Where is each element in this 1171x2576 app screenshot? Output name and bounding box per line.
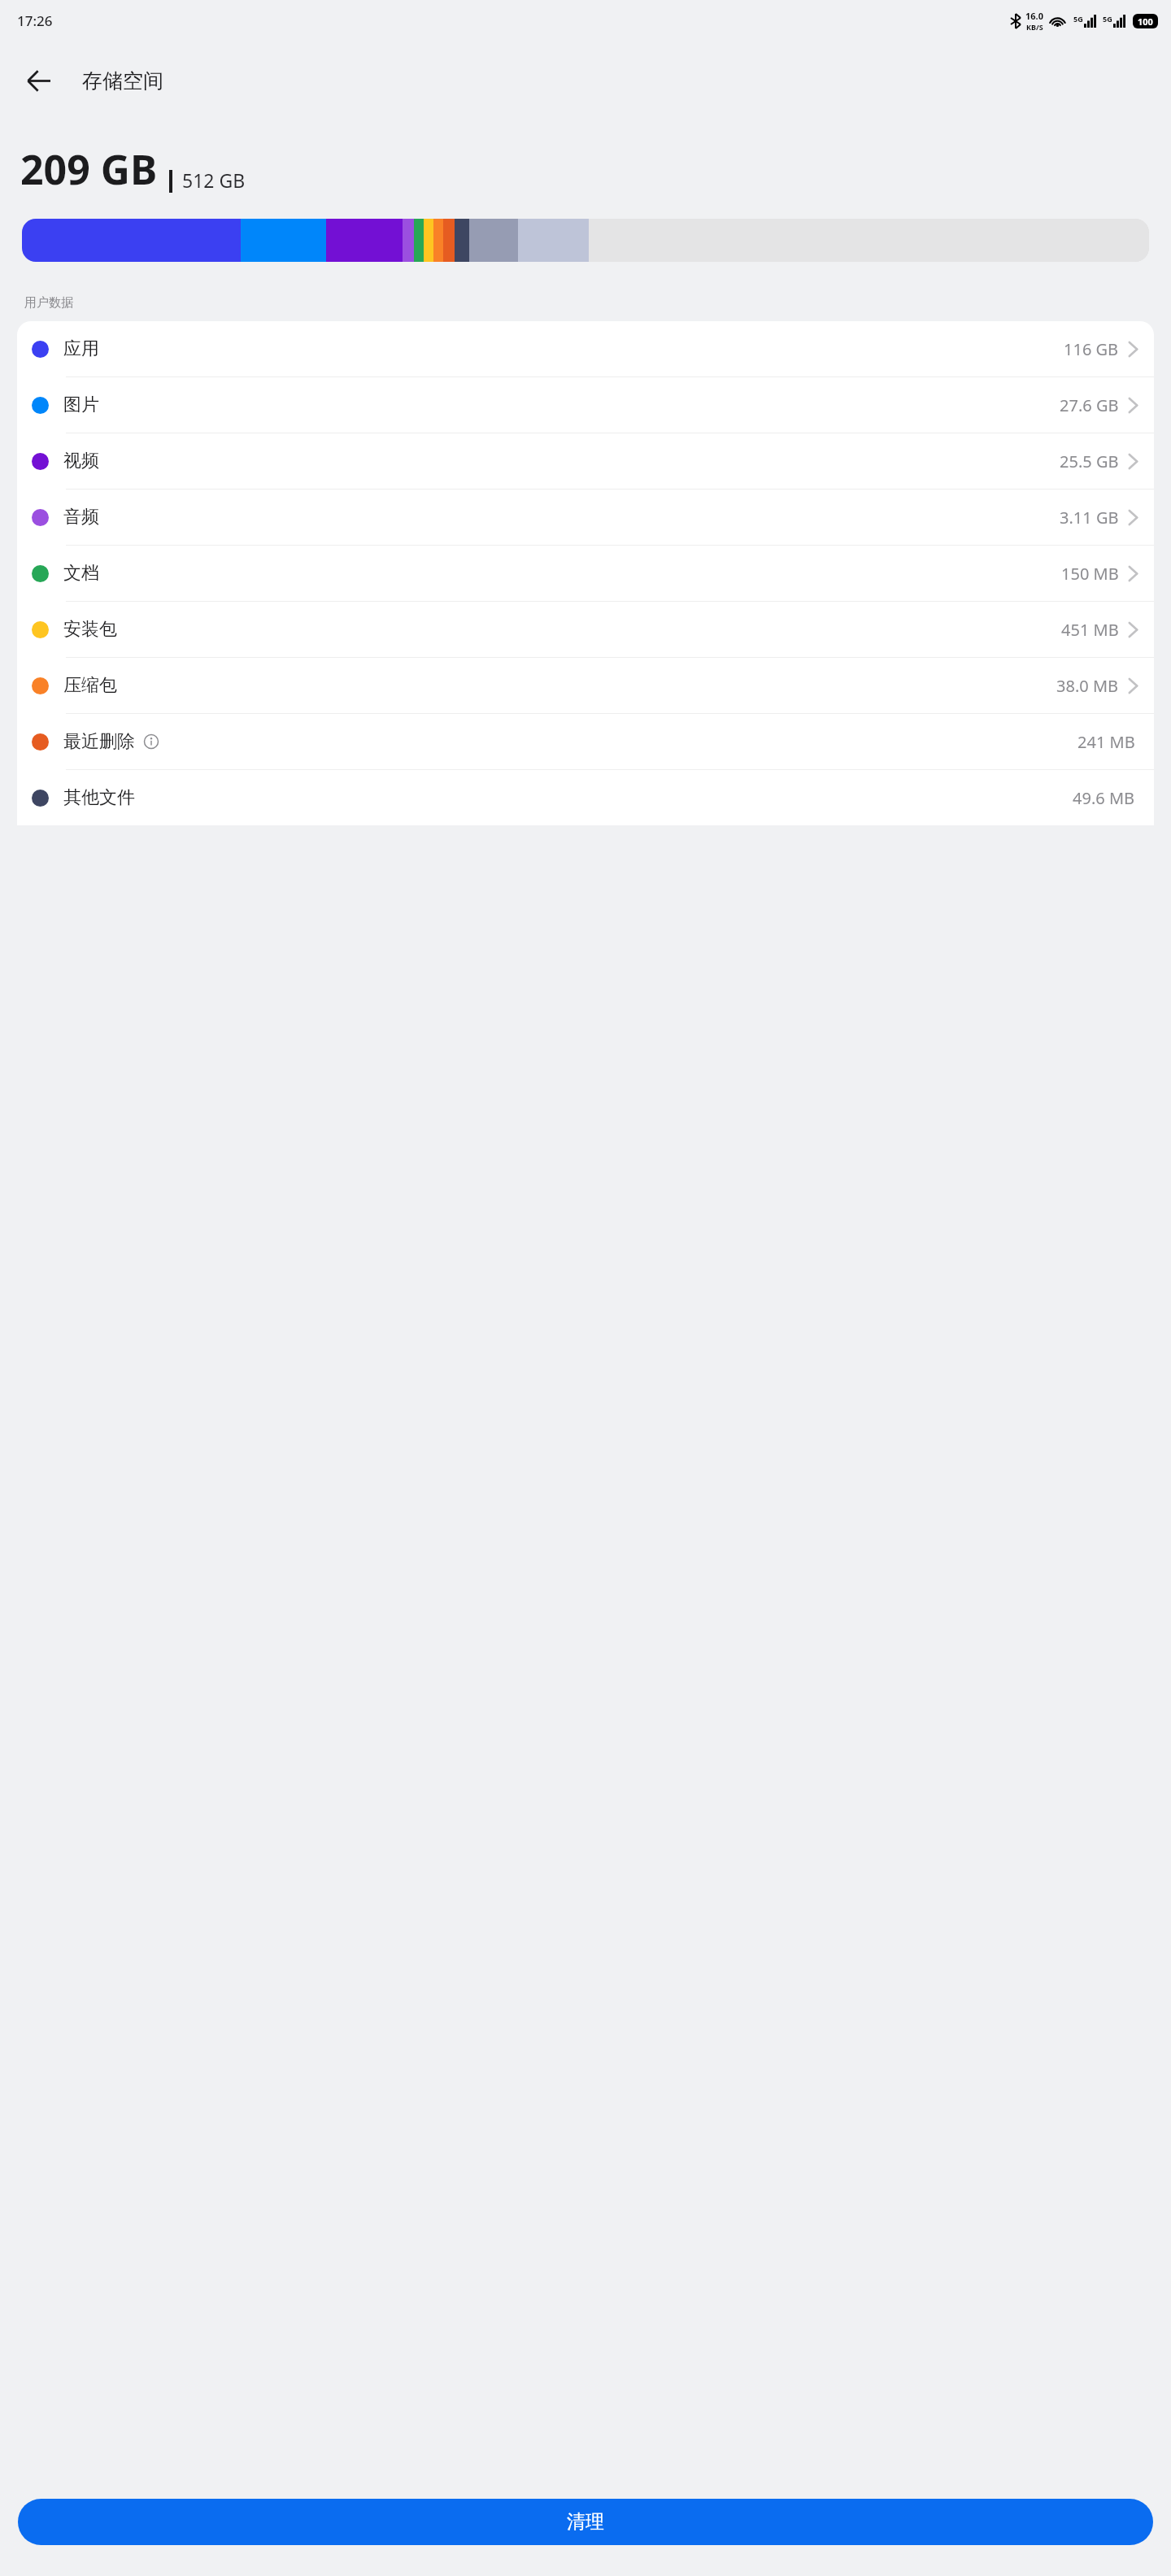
staticText: 150 MB — [1061, 563, 1119, 585]
button[interactable]: 清理 — [18, 2499, 1153, 2545]
staticText: 清理 — [567, 2510, 604, 2534]
staticText: 安装包 — [63, 618, 117, 641]
staticText: 25.5 GB — [1060, 450, 1119, 472]
staticText: 49.6 MB — [1073, 787, 1135, 809]
button[interactable]: Back — [0, 42, 76, 119]
button[interactable]: 最近删除 — [17, 714, 1154, 769]
staticText: 17:26 — [17, 11, 53, 30]
staticText: 38.0 MB — [1056, 675, 1119, 697]
staticText: 用户数据 — [24, 295, 73, 311]
staticText: 存储空间 — [82, 68, 163, 94]
staticText: KB/S — [1026, 22, 1043, 32]
button[interactable]: 视频 — [17, 433, 1154, 489]
staticText: 图片 — [63, 394, 99, 416]
staticText: 27.6 GB — [1060, 394, 1119, 416]
staticText: 5G — [1073, 14, 1083, 24]
staticText: 451 MB — [1061, 619, 1119, 641]
button[interactable]: 应用 — [17, 321, 1154, 376]
staticText: 116 GB — [1064, 338, 1119, 360]
button[interactable]: 图片 — [17, 377, 1154, 433]
staticText: 压缩包 — [63, 674, 117, 697]
staticText: 100 — [1138, 15, 1153, 28]
button[interactable]: 安装包 — [17, 602, 1154, 657]
button[interactable]: 音频 — [17, 490, 1154, 545]
staticText: 最近删除 — [63, 730, 135, 753]
staticText: 文档 — [63, 562, 99, 585]
staticText: 其他文件 — [63, 786, 135, 809]
staticText: 209 GB — [20, 141, 158, 197]
staticText: 241 MB — [1077, 731, 1135, 753]
staticText: 16.0 — [1025, 10, 1043, 22]
staticText: 5G — [1103, 14, 1112, 24]
button[interactable]: 其他文件 — [17, 770, 1154, 825]
staticText: 视频 — [63, 450, 99, 472]
staticText: 512 GB — [182, 168, 246, 193]
staticText: 3.11 GB — [1060, 507, 1119, 529]
button[interactable]: 文档 — [17, 546, 1154, 601]
staticText: 应用 — [63, 337, 99, 360]
staticText: 音频 — [63, 506, 99, 529]
button[interactable]: 压缩包 — [17, 658, 1154, 713]
